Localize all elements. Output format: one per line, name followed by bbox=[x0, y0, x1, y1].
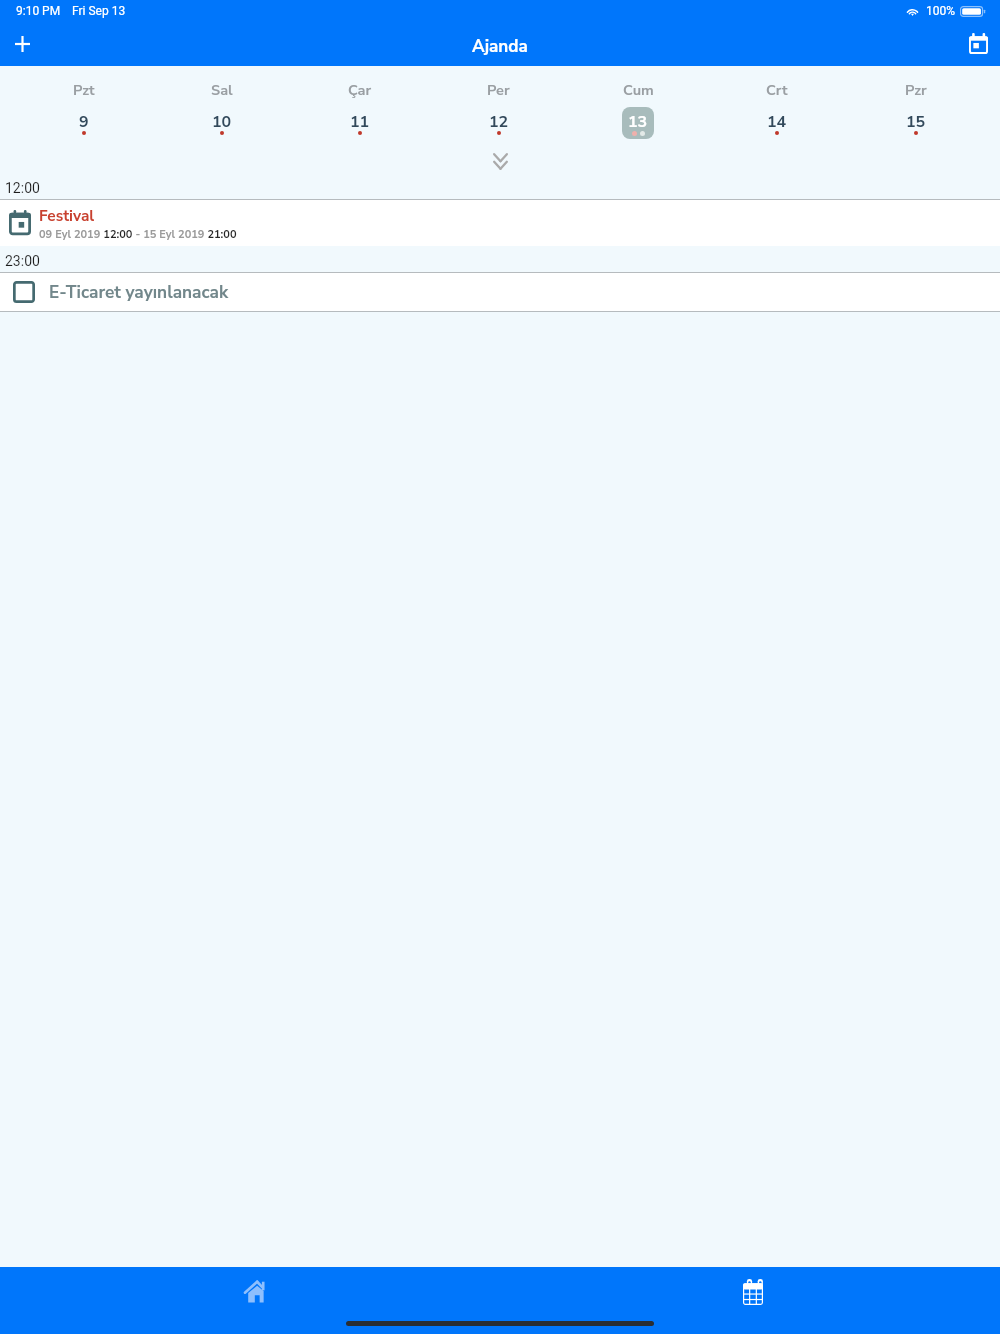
button[interactable]: Crt bbox=[707, 66, 846, 137]
staticText: Pzr bbox=[905, 80, 927, 100]
staticText: Pzt bbox=[73, 80, 95, 100]
staticText: Çar bbox=[348, 80, 372, 100]
staticText: Festival bbox=[39, 205, 95, 226]
staticText: Fri Sep 13 bbox=[72, 4, 126, 18]
staticText: 12:00 bbox=[5, 180, 40, 196]
button[interactable]: Expand calendar bbox=[490, 151, 510, 171]
staticText: Per bbox=[487, 80, 510, 100]
staticText: 23:00 bbox=[5, 253, 40, 269]
staticText: Crt bbox=[766, 80, 788, 100]
button[interactable]: Add event bbox=[6, 28, 38, 60]
button[interactable]: Sal bbox=[153, 66, 291, 137]
button[interactable]: Çar bbox=[291, 66, 429, 137]
button[interactable]: Per bbox=[429, 66, 568, 137]
button[interactable]: E-Ticaret yayınlanacak bbox=[0, 273, 1000, 311]
button[interactable]: Cum bbox=[568, 66, 707, 139]
button[interactable]: Festival bbox=[0, 200, 1000, 246]
staticText: 12 bbox=[489, 111, 509, 133]
staticText: 11 bbox=[350, 111, 370, 133]
staticText: 13 bbox=[628, 111, 648, 133]
button[interactable]: Calendar bbox=[500, 1267, 1000, 1316]
staticText: 10 bbox=[212, 111, 232, 133]
staticText: E-Ticaret yayınlanacak bbox=[49, 281, 229, 304]
staticText: Ajanda bbox=[472, 35, 528, 58]
staticText: 09 Eyl 2019 12:00 - 15 Eyl 2019 21:00 bbox=[39, 227, 237, 242]
staticText: 9 bbox=[79, 111, 89, 133]
staticText: 14 bbox=[767, 111, 787, 133]
button[interactable]: Pzr bbox=[846, 66, 985, 137]
staticText: Cum bbox=[623, 80, 654, 100]
staticText: 100% bbox=[926, 4, 956, 18]
button[interactable]: Go to today bbox=[962, 28, 994, 60]
button[interactable]: Home bbox=[0, 1267, 500, 1316]
staticText: 9:10 PM bbox=[16, 4, 61, 18]
button[interactable]: Pzt bbox=[15, 66, 153, 137]
staticText: Sal bbox=[211, 80, 233, 100]
staticText: 15 bbox=[906, 111, 926, 133]
